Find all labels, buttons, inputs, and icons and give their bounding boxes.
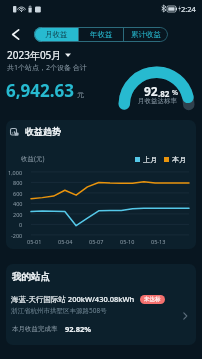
staticText: -200: [11, 232, 23, 239]
staticText: 400: [13, 200, 23, 207]
staticText: 200: [13, 211, 23, 218]
staticText: 本月收益完成率: [12, 325, 58, 333]
staticText: 我的站点: [12, 271, 50, 283]
staticText: %: [172, 88, 178, 98]
staticText: 月收益达标率: [138, 97, 177, 105]
staticText: 收益趋势: [25, 126, 61, 137]
staticText: 05-13: [151, 238, 166, 245]
button[interactable]: Back: [5, 24, 25, 44]
staticText: 0: [19, 221, 23, 228]
staticText: 2023年05月: [7, 48, 62, 62]
button[interactable]: 海蓝-天行国际站 200kW/430.08kWh: [6, 290, 196, 324]
button[interactable]: 年收益: [79, 27, 123, 42]
staticText: 600: [13, 190, 23, 197]
staticText: 收益(元): [21, 154, 45, 163]
staticText: 共1个站点，2个设备 合计: [7, 63, 87, 73]
staticText: 月收益: [45, 30, 68, 39]
staticText: 800: [13, 179, 23, 186]
staticText: 上月: [143, 155, 157, 164]
staticText: 92.82%: [65, 324, 92, 334]
staticText: 海蓝-天行国际站 200kW/430.08kWh: [11, 294, 135, 304]
staticText: 05-01: [27, 238, 42, 245]
staticText: 元: [77, 90, 84, 99]
staticText: 05-07: [89, 238, 104, 245]
button[interactable]: 累计收益: [124, 27, 168, 42]
staticText: 05-10: [120, 238, 135, 245]
staticText: 年收益: [90, 30, 113, 39]
button[interactable]: 月收益: [34, 27, 78, 42]
staticText: 本月: [172, 155, 186, 164]
staticText: 累计收益: [131, 30, 161, 39]
staticText: 05-04: [58, 238, 73, 245]
staticText: 2:24: [181, 4, 196, 14]
staticText: .82: [158, 88, 170, 99]
staticText: 浙江省杭州市拱墅区丰源路508号: [11, 306, 107, 315]
staticText: 1,000: [8, 169, 23, 176]
staticText: 6,942.63: [6, 79, 74, 102]
staticText: 92: [144, 83, 158, 99]
staticText: 未达标: [144, 296, 161, 303]
